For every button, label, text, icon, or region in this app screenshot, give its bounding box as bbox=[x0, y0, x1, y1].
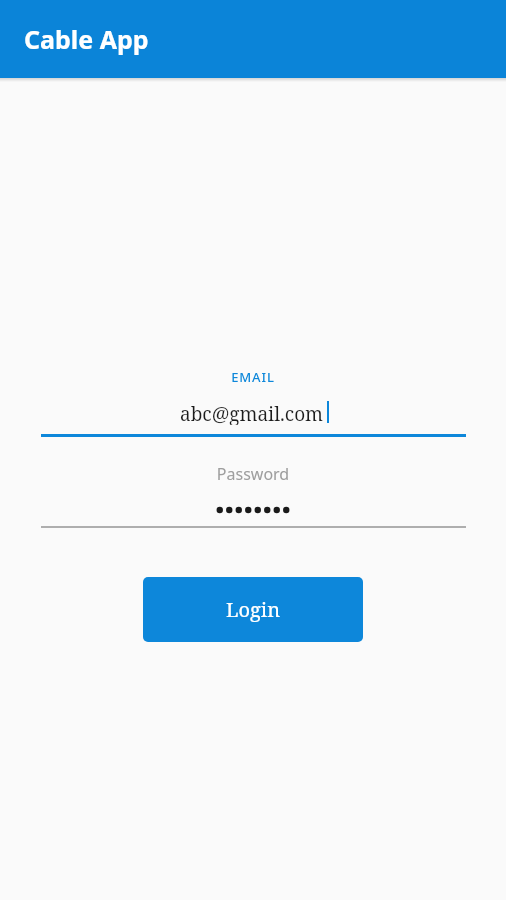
staticText: abc@gmail.com bbox=[180, 401, 324, 425]
staticText: EMAIL bbox=[0, 368, 506, 386]
staticText: Login bbox=[226, 596, 281, 623]
staticText: Password bbox=[0, 463, 506, 485]
button[interactable]: abc@gmail.com bbox=[0, 401, 506, 425]
button[interactable] bbox=[0, 501, 506, 519]
staticText: Cable App bbox=[24, 22, 149, 56]
button[interactable]: Login bbox=[143, 577, 363, 642]
